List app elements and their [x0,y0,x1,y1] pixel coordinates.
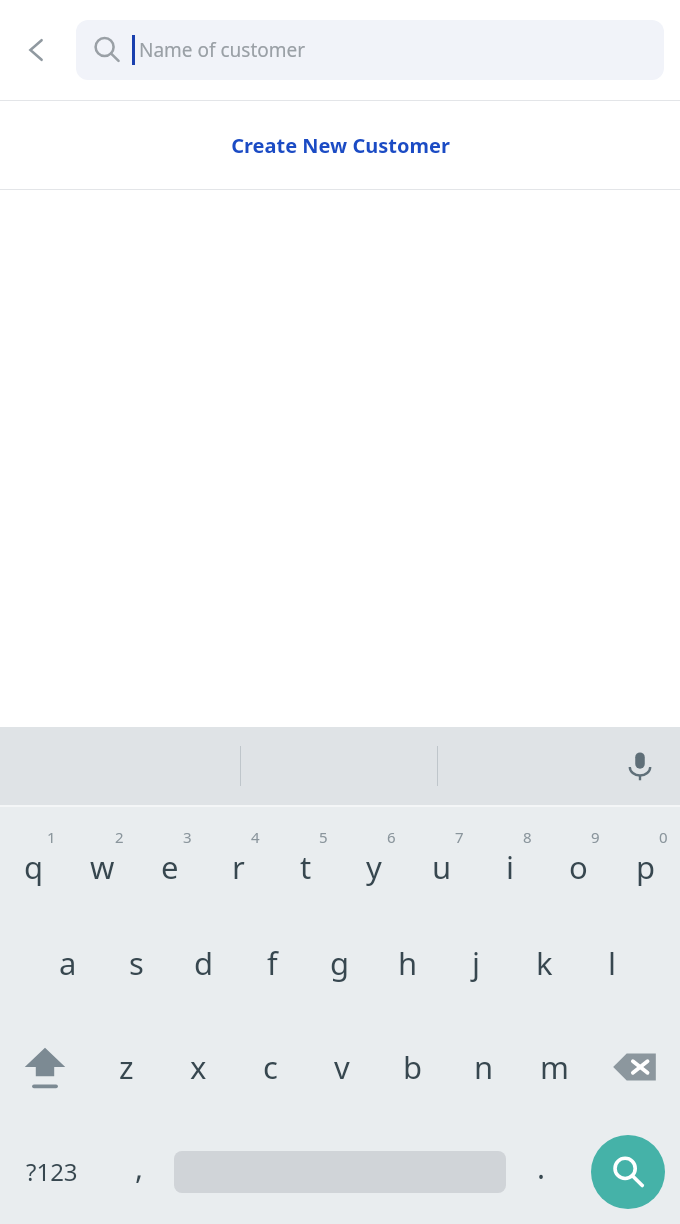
button[interactable]: . [506,1119,576,1224]
button[interactable]: p [612,807,680,911]
staticText: f [267,942,278,984]
staticText: b [403,1046,423,1088]
button[interactable]: Space [174,1119,506,1224]
button[interactable]: k [510,911,578,1015]
button[interactable]: c [234,1015,306,1119]
staticText: s [129,942,144,984]
staticText: x [190,1046,207,1088]
staticText: Name of customer [139,37,306,63]
staticText: j [472,942,480,984]
button[interactable]: Search [576,1119,680,1224]
staticText: ?123 [26,1155,78,1188]
staticText: 2 [115,827,124,847]
button[interactable]: Name of customer [76,20,664,80]
button[interactable]: Create New Customer [0,101,680,189]
button[interactable]: m [519,1015,590,1119]
staticText: 6 [387,827,396,847]
staticText: t [300,846,312,888]
button[interactable]: a [34,911,102,1015]
staticText: u [432,846,452,888]
staticText: k [536,942,553,984]
button[interactable]: Backspace [590,1015,680,1119]
staticText: 4 [251,827,260,847]
staticText: 3 [183,827,192,847]
staticText: 7 [455,827,464,847]
staticText: a [59,942,77,984]
staticText: l [608,942,616,984]
staticText: 9 [591,827,600,847]
button[interactable]: n [448,1015,519,1119]
button[interactable]: s [102,911,170,1015]
button[interactable]: z [90,1015,162,1119]
staticText: w [90,846,115,888]
button[interactable]: b [377,1015,448,1119]
button[interactable]: q [0,807,68,911]
staticText: o [569,846,588,888]
staticText: n [474,1046,494,1088]
button[interactable]: h [374,911,442,1015]
button[interactable]: v [306,1015,377,1119]
button[interactable]: o [544,807,612,911]
button[interactable]: w [68,807,136,911]
button[interactable]: u [408,807,476,911]
staticText: h [398,942,418,984]
staticText: p [636,846,656,888]
button[interactable]: Voice input [612,738,668,794]
staticText: c [263,1046,278,1088]
staticText: m [540,1046,569,1088]
staticText: 1 [47,827,56,847]
staticText: e [161,846,179,888]
staticText: 0 [659,827,668,847]
button[interactable]: t [272,807,340,911]
button[interactable]: Shift [0,1015,90,1119]
button[interactable]: e [136,807,204,911]
button[interactable]: Back [8,22,64,78]
button[interactable]: j [442,911,510,1015]
staticText: Create New Customer [231,132,450,159]
staticText: 5 [319,827,328,847]
button[interactable]: l [578,911,646,1015]
staticText: y [366,846,382,888]
staticText: , [135,1147,144,1188]
button[interactable]: i [476,807,544,911]
staticText: d [194,942,214,984]
staticText: 8 [523,827,532,847]
staticText: q [24,846,44,888]
staticText: r [232,846,245,888]
button[interactable]: y [340,807,408,911]
staticText: v [334,1046,350,1088]
staticText: g [330,942,350,984]
button[interactable]: f [238,911,306,1015]
button[interactable]: r [204,807,272,911]
staticText: i [506,846,514,888]
button[interactable]: d [170,911,238,1015]
button[interactable]: , [104,1119,174,1224]
button[interactable]: g [306,911,374,1015]
staticText: . [537,1147,546,1188]
staticText: z [119,1046,134,1088]
button[interactable]: x [162,1015,234,1119]
button[interactable]: ?123 [0,1119,104,1224]
